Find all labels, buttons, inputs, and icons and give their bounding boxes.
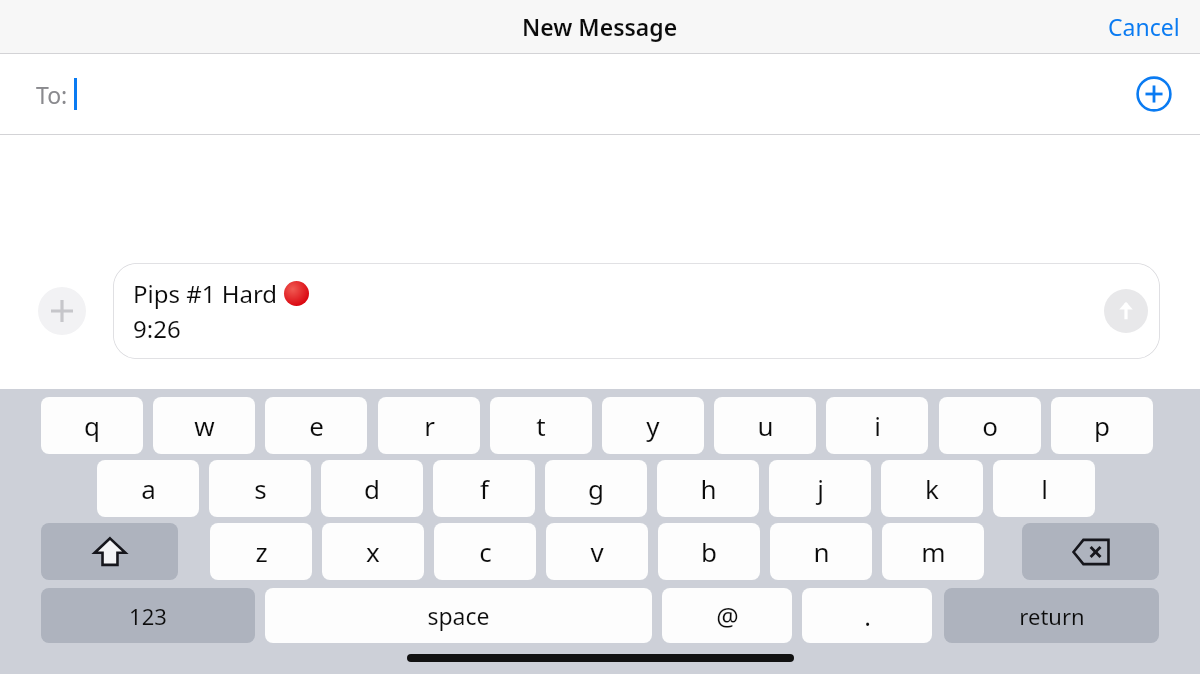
staticText: t	[536, 408, 546, 443]
button[interactable]: e	[265, 397, 367, 454]
button[interactable]: @	[662, 588, 792, 643]
staticText: o	[982, 408, 998, 443]
button[interactable]: u	[714, 397, 816, 454]
button[interactable]: j	[769, 460, 871, 517]
button[interactable]: g	[545, 460, 647, 517]
staticText: v	[590, 534, 604, 569]
button[interactable]: return	[944, 588, 1159, 643]
staticText: b	[701, 534, 717, 569]
button[interactable]: Backspace	[1022, 523, 1159, 580]
button[interactable]: Add attachment	[38, 287, 86, 335]
staticText: s	[254, 471, 267, 506]
staticText: r	[424, 408, 435, 443]
button[interactable]: n	[770, 523, 872, 580]
button[interactable]: p	[1051, 397, 1153, 454]
button[interactable]: k	[881, 460, 983, 517]
button[interactable]: d	[321, 460, 423, 517]
staticText: z	[255, 534, 268, 569]
staticText: f	[480, 471, 489, 506]
button[interactable]: v	[546, 523, 648, 580]
staticText: Pips #1 Hard	[133, 277, 284, 310]
staticText: return	[1019, 601, 1085, 631]
button[interactable]: i	[826, 397, 928, 454]
staticText: e	[309, 408, 324, 443]
staticText: To:	[36, 79, 68, 110]
staticText: New Message	[522, 11, 678, 42]
staticText: h	[700, 471, 717, 506]
button[interactable]: Add contact	[1132, 72, 1176, 116]
button[interactable]: 123	[41, 588, 255, 643]
button[interactable]: x	[322, 523, 424, 580]
button[interactable]: space	[265, 588, 652, 643]
button[interactable]: s	[209, 460, 311, 517]
staticText: c	[479, 534, 492, 569]
button[interactable]: z	[210, 523, 312, 580]
button[interactable]: m	[882, 523, 984, 580]
staticText: k	[925, 471, 939, 506]
staticText: i	[874, 408, 881, 443]
button[interactable]: h	[657, 460, 759, 517]
button[interactable]: Shift	[41, 523, 178, 580]
staticText: y	[646, 408, 660, 443]
button[interactable]: f	[433, 460, 535, 517]
staticText: u	[757, 408, 774, 443]
button[interactable]: q	[41, 397, 143, 454]
staticText: x	[366, 534, 380, 569]
staticText: w	[194, 408, 215, 443]
staticText: @	[716, 599, 739, 633]
button[interactable]: Cancel	[1088, 3, 1200, 50]
button[interactable]: Send	[1104, 289, 1148, 333]
staticText: space	[427, 600, 490, 631]
button[interactable]: b	[658, 523, 760, 580]
staticText: l	[1041, 471, 1048, 506]
button[interactable]: l	[993, 460, 1095, 517]
button[interactable]: y	[602, 397, 704, 454]
staticText: j	[817, 471, 824, 506]
button[interactable]: r	[378, 397, 480, 454]
button[interactable]: o	[939, 397, 1041, 454]
staticText: .	[864, 599, 871, 633]
button[interactable]: .	[802, 588, 932, 643]
button[interactable]: w	[153, 397, 255, 454]
button[interactable]: c	[434, 523, 536, 580]
staticText: 9:26	[133, 312, 181, 345]
staticText: 123	[129, 601, 167, 631]
staticText: m	[921, 534, 946, 569]
staticText: n	[813, 534, 830, 569]
button[interactable]: t	[490, 397, 592, 454]
staticText: p	[1094, 408, 1110, 443]
button[interactable]: Pips #1 Hard	[113, 263, 1160, 359]
staticText: d	[364, 471, 380, 506]
staticText: g	[588, 471, 604, 506]
staticText: q	[84, 408, 100, 443]
staticText: Cancel	[1108, 11, 1180, 42]
staticText: a	[141, 471, 156, 506]
button[interactable]: a	[97, 460, 199, 517]
